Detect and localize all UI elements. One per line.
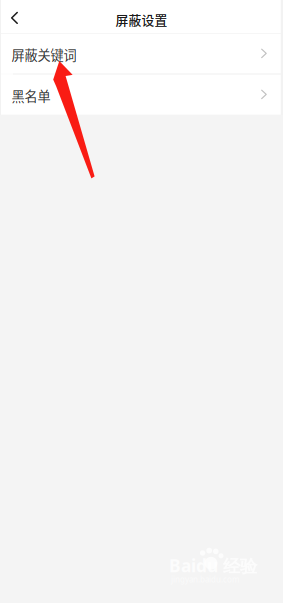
- button[interactable]: 屏蔽关键词: [0, 34, 283, 74]
- button[interactable]: Back: [0, 0, 29, 33]
- staticText: 屏蔽关键词: [12, 45, 77, 64]
- staticText: Baidu 经验: [169, 554, 257, 577]
- button[interactable]: 黑名单: [0, 75, 283, 115]
- staticText: 黑名单: [12, 86, 51, 105]
- staticText: 屏蔽设置: [115, 10, 167, 29]
